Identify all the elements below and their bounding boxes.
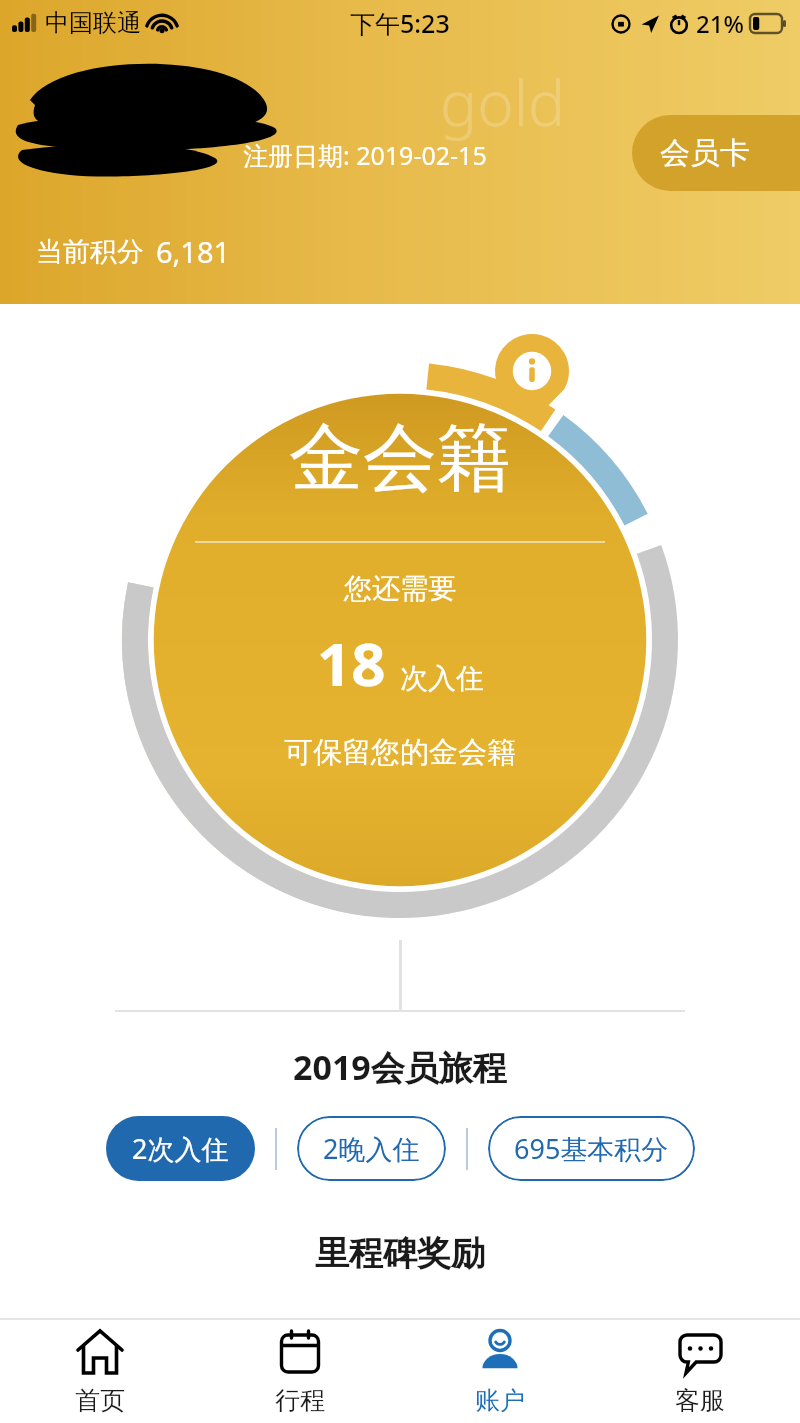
staticText: 可保留您的金会籍 [284,734,516,771]
staticText: 6,181 [156,232,231,271]
staticText: 2019会员旅程 [293,1044,507,1090]
button[interactable]: 行程 [200,1320,400,1423]
staticText: 里程碑奖励 [315,1232,485,1275]
button[interactable]: 客服 [600,1320,800,1423]
button[interactable]: 信息 [495,334,569,422]
staticText: 您还需要 [344,571,456,606]
staticText: 当前积分 [36,235,144,269]
button[interactable]: 首页 [0,1320,200,1423]
staticText: 客服 [675,1385,725,1416]
staticText: 账户 [475,1385,525,1416]
staticText: 首页 [75,1385,125,1416]
button[interactable]: 2晚入住 [297,1116,446,1181]
button[interactable]: 2次入住 [106,1116,255,1181]
staticText: 2次入住 [132,1130,229,1167]
button[interactable]: 账户 [400,1320,600,1423]
staticText: 中国联通 [45,8,141,38]
staticText: 金会籍 [289,412,511,505]
staticText: 注册日期: 2019-02-15 [243,138,487,172]
staticText: 行程 [275,1385,325,1416]
staticText: 下午5:23 [350,6,450,40]
button[interactable]: 会员卡 [632,115,800,191]
button[interactable]: 695基本积分 [488,1116,695,1181]
staticText: 会员卡 [660,134,750,172]
staticText: 2晚入住 [323,1130,420,1167]
staticText: 次入住 [400,661,484,696]
staticText: 18 [317,622,386,704]
staticText: 21% [696,7,744,40]
staticText: gold [440,60,566,144]
staticText: 695基本积分 [514,1130,669,1167]
